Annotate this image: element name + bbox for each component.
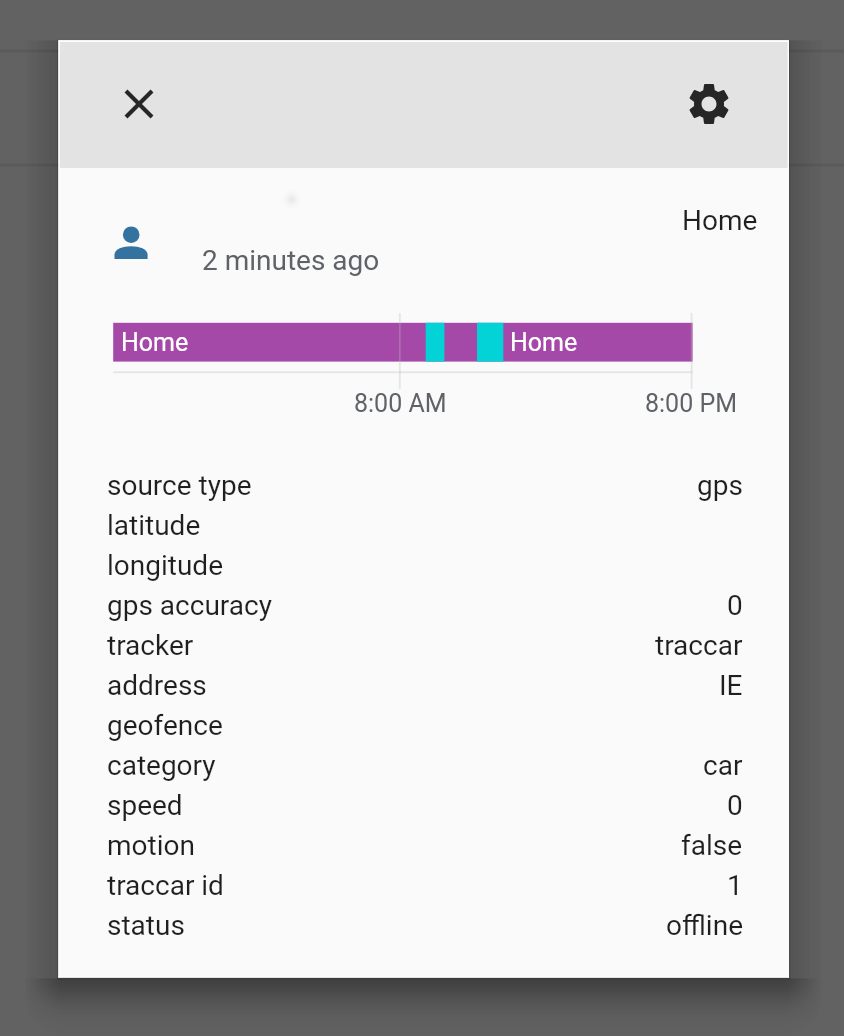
staticText: Home — [682, 204, 758, 237]
staticText: address — [107, 669, 207, 702]
staticText: false — [681, 829, 743, 862]
staticText: 2 minutes ago — [202, 244, 380, 277]
staticText: tracker — [107, 629, 194, 662]
staticText: status — [107, 909, 185, 942]
button[interactable]: Settings — [661, 56, 757, 152]
staticText: 8:00 AM — [354, 389, 447, 418]
staticText: longitude — [107, 549, 224, 582]
staticText: Home — [510, 328, 578, 357]
staticText: speed — [107, 789, 183, 822]
staticText: gps — [697, 469, 743, 502]
staticText: 0 — [727, 789, 743, 822]
staticText: car — [703, 749, 743, 782]
staticText: 8:00 PM — [645, 389, 738, 418]
button[interactable]: Close — [91, 56, 187, 152]
staticText: category — [107, 749, 216, 782]
staticText: Home — [121, 328, 189, 357]
staticText: 1 — [727, 869, 743, 902]
staticText: source type — [107, 469, 252, 502]
staticText: traccar — [655, 629, 743, 662]
staticText: motion — [107, 829, 195, 862]
staticText: IE — [719, 669, 743, 702]
staticText: geofence — [107, 709, 223, 742]
staticText: offline — [666, 909, 743, 942]
staticText: latitude — [107, 509, 201, 542]
staticText: traccar id — [107, 869, 224, 902]
staticText: 0 — [727, 589, 743, 622]
staticText: gps accuracy — [107, 589, 272, 622]
